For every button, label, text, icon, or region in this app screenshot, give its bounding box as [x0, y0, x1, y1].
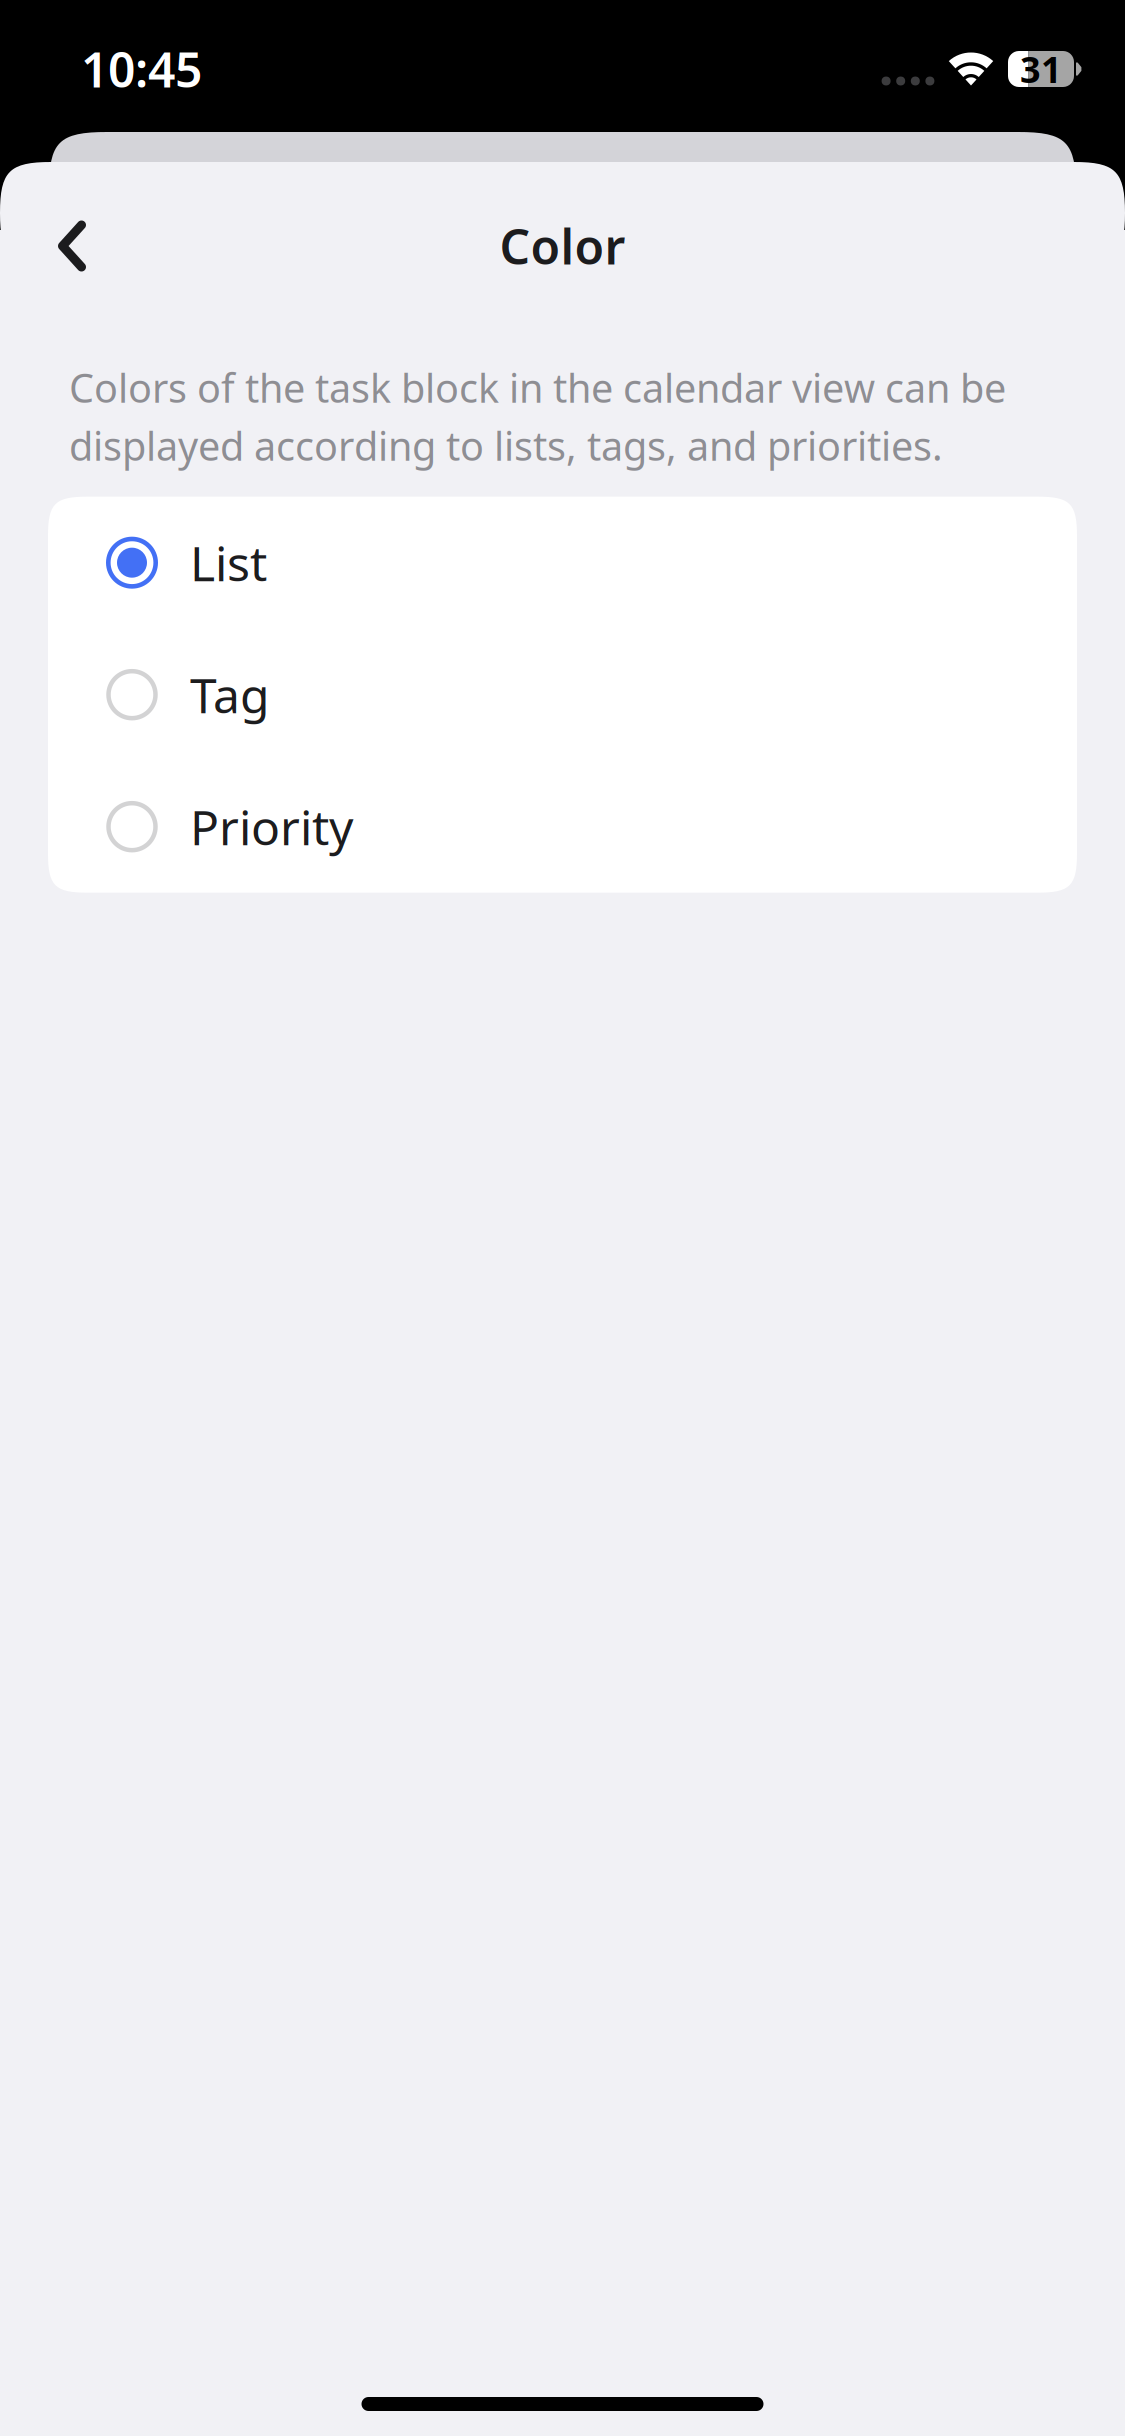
staticText: List — [190, 531, 267, 594]
staticText: Colors of the task block in the calendar… — [69, 361, 1006, 472]
staticText: Color — [499, 214, 625, 278]
staticText: Tag — [190, 663, 270, 726]
staticText: Priority — [190, 795, 353, 858]
button[interactable]: Back — [26, 208, 118, 284]
button[interactable]: Tag — [48, 629, 1077, 761]
button[interactable]: List — [48, 497, 1077, 629]
button[interactable]: Priority — [48, 761, 1077, 893]
staticText: 10:45 — [81, 37, 202, 101]
staticText: 31 — [1020, 45, 1062, 93]
